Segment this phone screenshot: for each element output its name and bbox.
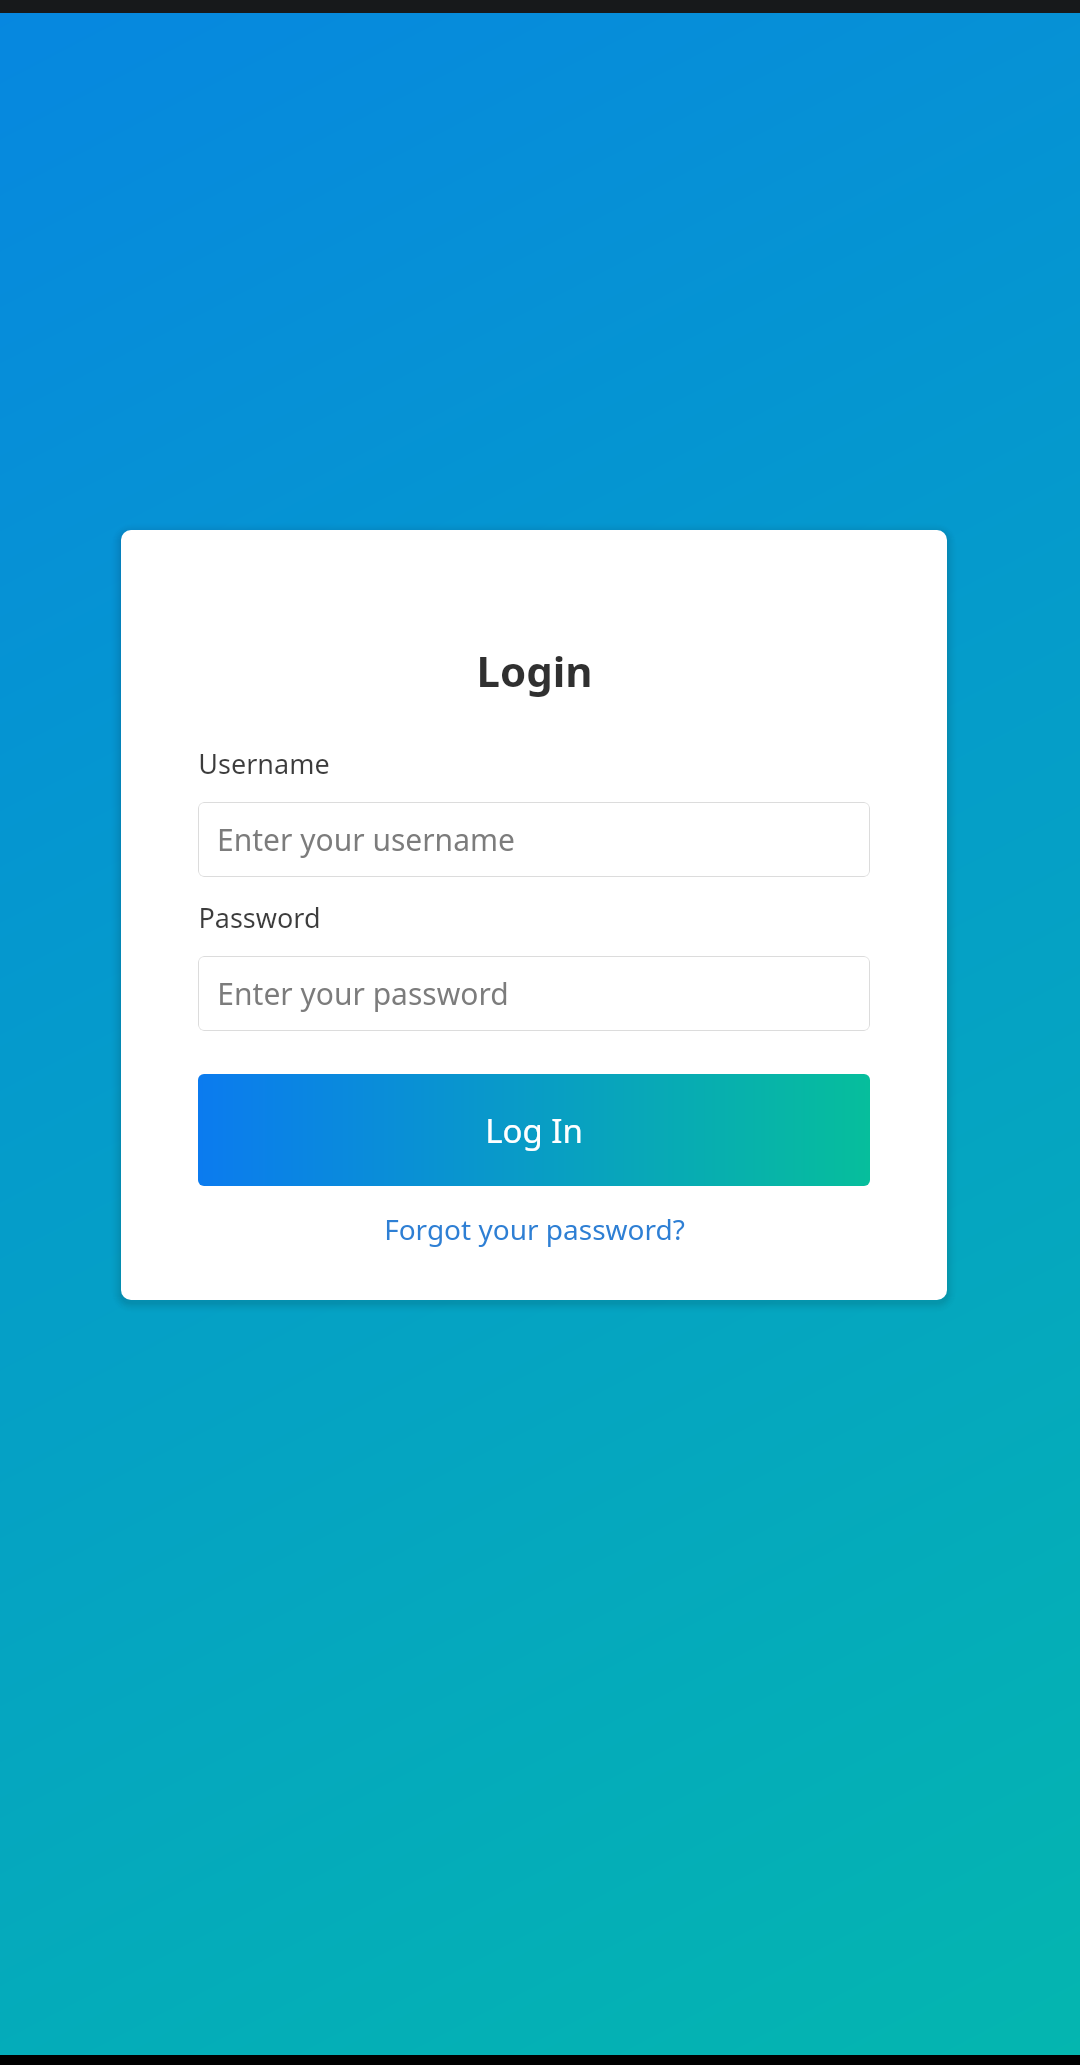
staticText: Forgot your password? xyxy=(384,1210,685,1248)
staticText: Username xyxy=(198,745,330,782)
button[interactable]: Forgot your password? xyxy=(198,1186,870,1272)
button[interactable]: Log In xyxy=(198,1074,870,1186)
staticText: Log In xyxy=(485,1108,583,1153)
staticText: Enter your username xyxy=(217,819,515,860)
button[interactable]: Enter your username xyxy=(198,802,870,877)
staticText: Enter your password xyxy=(217,973,509,1014)
staticText: Password xyxy=(198,899,321,936)
button[interactable]: Enter your password xyxy=(198,956,870,1031)
staticText: Login xyxy=(476,642,593,699)
